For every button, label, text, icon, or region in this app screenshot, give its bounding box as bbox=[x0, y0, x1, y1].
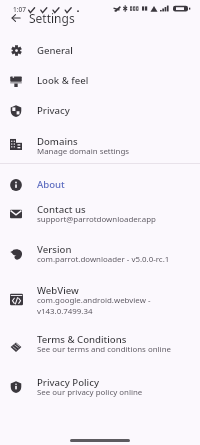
staticText: com.google.android.webview - v143.0.7499… bbox=[37, 295, 151, 317]
staticText: Manage domain settings bbox=[37, 146, 130, 157]
staticText: See our privacy policy online bbox=[37, 387, 143, 398]
staticText: com.parrot.downloader - v5.0.0-rc.1 bbox=[37, 254, 170, 265]
staticText: About bbox=[37, 178, 65, 191]
button[interactable]: Privacy Policy bbox=[0, 371, 200, 408]
staticText: Privacy Policy bbox=[37, 376, 99, 389]
button[interactable]: General bbox=[0, 35, 200, 65]
button[interactable]: Privacy bbox=[0, 95, 200, 125]
staticText: Domains bbox=[37, 135, 78, 148]
staticText: Look & feel bbox=[37, 74, 89, 87]
button[interactable]: Look & feel bbox=[0, 65, 200, 95]
button[interactable]: About bbox=[0, 169, 200, 199]
staticText: Terms & Conditions bbox=[37, 333, 127, 346]
staticText: Privacy bbox=[37, 104, 70, 117]
button[interactable]: Contact us bbox=[0, 198, 200, 235]
staticText: support@parrotdownloader.app bbox=[37, 214, 156, 225]
staticText: 1:07 bbox=[13, 5, 26, 14]
staticText: See our terms and conditions online bbox=[37, 344, 171, 355]
button[interactable]: Back bbox=[6, 8, 26, 28]
button[interactable]: Version bbox=[0, 238, 200, 275]
button[interactable]: Terms & Conditions bbox=[0, 328, 200, 365]
button[interactable]: WebView bbox=[0, 279, 200, 324]
staticText: Settings bbox=[29, 10, 75, 26]
staticText: General bbox=[37, 44, 73, 57]
staticText: Version bbox=[37, 243, 72, 256]
staticText: WebView bbox=[37, 284, 79, 297]
staticText: Contact us bbox=[37, 203, 86, 216]
button[interactable]: Domains bbox=[0, 130, 200, 167]
